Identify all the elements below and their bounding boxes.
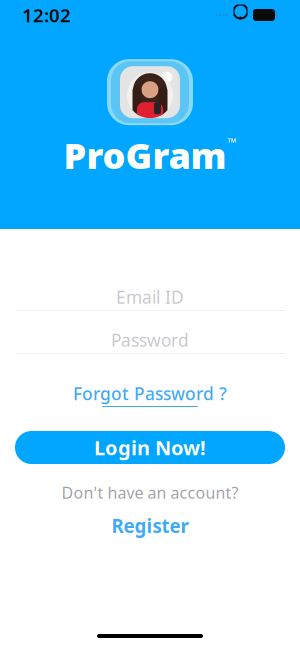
staticText: ™ xyxy=(227,134,236,150)
staticText: Email ID xyxy=(116,285,184,308)
button[interactable]: Login Now! xyxy=(15,431,285,464)
staticText: ProGram xyxy=(63,131,226,179)
staticText: Login Now! xyxy=(94,434,206,461)
staticText: Forgot Password ? xyxy=(73,382,227,405)
button[interactable]: Forgot Password ? xyxy=(65,378,235,411)
staticText: Register xyxy=(111,513,188,538)
staticText: Password xyxy=(111,328,189,351)
button[interactable]: Register xyxy=(101,510,198,541)
staticText: 12:02 xyxy=(22,3,71,27)
staticText: Don't have an account? xyxy=(61,482,238,503)
